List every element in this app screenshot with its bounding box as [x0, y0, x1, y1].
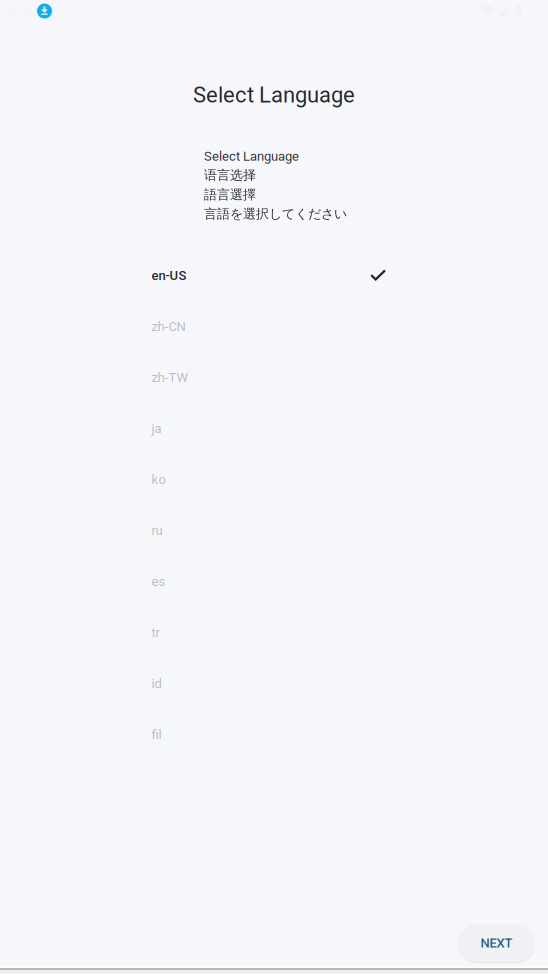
button[interactable]: ko — [151, 454, 396, 505]
staticText: fil — [151, 727, 161, 742]
staticText: 语言选择 — [204, 167, 256, 183]
staticText: zh-TW — [151, 370, 188, 385]
button[interactable]: NEXT — [458, 923, 535, 963]
staticText: es — [151, 574, 165, 589]
staticText: 語言選擇 — [204, 186, 256, 203]
button[interactable]: zh-CN — [151, 301, 396, 352]
staticText: 言語を選択してください — [204, 206, 347, 222]
staticText: en-US — [151, 268, 186, 283]
staticText: zh-CN — [151, 319, 185, 334]
staticText: ru — [151, 523, 162, 538]
button[interactable]: en-US — [151, 250, 396, 301]
staticText: Select Language — [193, 82, 355, 108]
button[interactable]: zh-TW — [151, 352, 396, 403]
staticText: id — [151, 676, 161, 691]
staticText: ja — [151, 421, 161, 436]
staticText: Select Language — [204, 149, 299, 164]
staticText: NEXT — [480, 935, 512, 951]
staticText: ko — [151, 472, 165, 487]
staticText: tr — [151, 625, 159, 640]
